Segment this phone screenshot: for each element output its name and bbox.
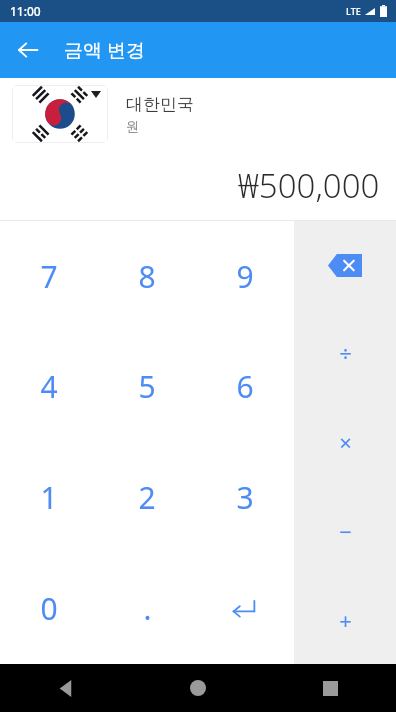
staticText: 5 xyxy=(138,366,156,407)
staticText: 11:00 xyxy=(10,3,41,19)
button[interactable]: Enter xyxy=(196,553,294,664)
staticText: 7 xyxy=(40,256,58,297)
button[interactable]: 4 xyxy=(0,331,98,442)
staticText: + xyxy=(339,605,352,635)
staticText: 6 xyxy=(236,366,254,407)
button[interactable]: 7 xyxy=(0,221,98,331)
staticText: 9 xyxy=(236,256,254,297)
button[interactable]: Backspace xyxy=(294,221,396,309)
staticText: . xyxy=(143,588,152,629)
staticText: 원 xyxy=(126,118,139,134)
button[interactable]: 6 xyxy=(196,331,294,442)
staticText: × xyxy=(339,427,352,457)
button[interactable]: − xyxy=(294,486,396,575)
button[interactable]: 1 xyxy=(0,442,98,553)
button[interactable]: 0 xyxy=(0,553,98,664)
button[interactable]: 9 xyxy=(196,221,294,331)
button[interactable]: 대한민국 xyxy=(0,78,396,150)
button[interactable]: . xyxy=(98,553,196,664)
staticText: 금액 변경 xyxy=(64,37,145,63)
button[interactable]: 8 xyxy=(98,221,196,331)
staticText: 0 xyxy=(40,588,58,629)
button[interactable]: Back xyxy=(8,30,48,70)
staticText: 8 xyxy=(138,256,156,297)
staticText: 대한민국 xyxy=(126,94,194,115)
staticText: ÷ xyxy=(339,338,352,368)
staticText: − xyxy=(339,516,352,546)
staticText: 2 xyxy=(138,477,156,518)
staticText: 1 xyxy=(40,477,58,518)
other: Enter xyxy=(230,594,260,624)
button[interactable]: Recents xyxy=(264,664,396,712)
button[interactable]: ÷ xyxy=(294,309,396,397)
button[interactable]: 2 xyxy=(98,442,196,553)
button[interactable]: + xyxy=(294,575,396,664)
button[interactable]: Home xyxy=(132,664,264,712)
button[interactable]: Back xyxy=(0,664,132,712)
button[interactable]: 5 xyxy=(98,331,196,442)
staticText: 3 xyxy=(236,477,254,518)
staticText: LTE xyxy=(346,5,361,17)
staticText: ₩500,000 xyxy=(238,163,380,208)
button[interactable]: 3 xyxy=(196,442,294,553)
button[interactable]: × xyxy=(294,397,396,486)
staticText: 4 xyxy=(40,366,58,407)
